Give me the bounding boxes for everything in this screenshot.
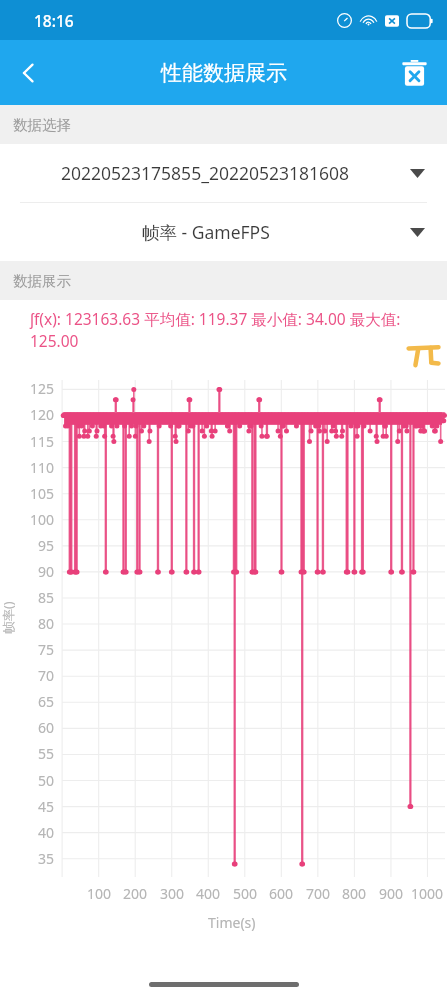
staticText: 帧率 - GameFPS	[142, 220, 270, 244]
button[interactable]: 20220523175855_20220523181608	[0, 144, 447, 202]
button[interactable]: 帧率 - GameFPS	[0, 203, 447, 261]
staticText: 500	[223, 884, 267, 903]
staticText: 115	[18, 432, 54, 451]
staticText: 75	[18, 640, 54, 659]
staticText: 95	[18, 536, 54, 555]
staticText: 帧率()	[0, 601, 17, 634]
staticText: 125	[18, 379, 54, 398]
staticText: 90	[18, 562, 54, 581]
staticText: 40	[18, 823, 54, 842]
staticText: 100	[18, 510, 54, 529]
staticText: 35	[18, 849, 54, 868]
staticText: 55	[18, 744, 54, 763]
staticText: 18:16	[34, 10, 74, 31]
staticText: 70	[18, 666, 54, 685]
staticText: 110	[18, 458, 54, 477]
staticText: 900	[369, 884, 413, 903]
staticText: 50	[18, 771, 54, 790]
staticText: 20220523175855_20220523181608	[61, 161, 350, 185]
staticText: 800	[332, 884, 376, 903]
staticText: 性能数据展示	[161, 60, 287, 86]
staticText: 数据选择	[13, 116, 71, 134]
staticText: 1000	[405, 884, 447, 903]
staticText: 400	[186, 884, 230, 903]
button[interactable]: Back	[0, 44, 58, 102]
staticText: 85	[18, 588, 54, 607]
staticText: 数据展示	[13, 272, 71, 290]
staticText: 700	[296, 884, 340, 903]
staticText: ʃf(x): 123163.63 平均值: 119.37 最小值: 34.00 …	[30, 308, 435, 351]
staticText: 200	[113, 884, 157, 903]
staticText: 80	[18, 614, 54, 633]
staticText: 100	[77, 884, 121, 903]
staticText: 45	[18, 797, 54, 816]
staticText: 600	[259, 884, 303, 903]
staticText: 120	[18, 405, 54, 424]
staticText: 65	[18, 692, 54, 711]
button[interactable]: Delete	[390, 49, 438, 97]
staticText: Time(s)	[208, 913, 256, 932]
staticText: 60	[18, 718, 54, 737]
staticText: 105	[18, 484, 54, 503]
staticText: 300	[150, 884, 194, 903]
